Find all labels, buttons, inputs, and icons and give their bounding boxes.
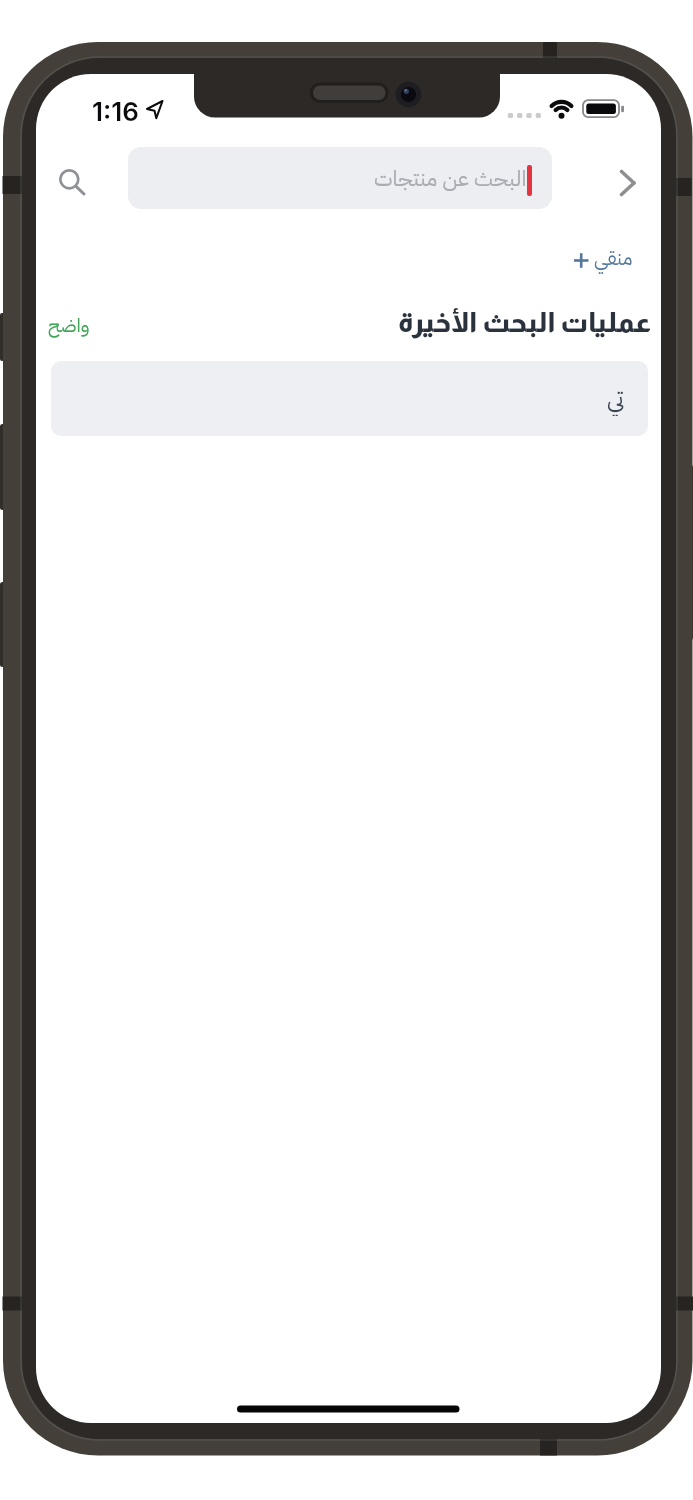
staticText: تي [607, 382, 625, 416]
button[interactable]: منقي [433, 241, 633, 275]
staticText: عمليات البحث الأخيرة [398, 307, 652, 338]
button[interactable]: البحث عن منتجات [128, 147, 552, 209]
staticText: منقي [594, 243, 633, 273]
button[interactable]: تي [51, 361, 648, 436]
button[interactable]: واضح [48, 310, 108, 340]
staticText: 1:16 [92, 96, 139, 127]
staticText: واضح [48, 311, 90, 340]
button[interactable] [608, 158, 652, 202]
staticText: البحث عن منتجات [374, 162, 527, 195]
